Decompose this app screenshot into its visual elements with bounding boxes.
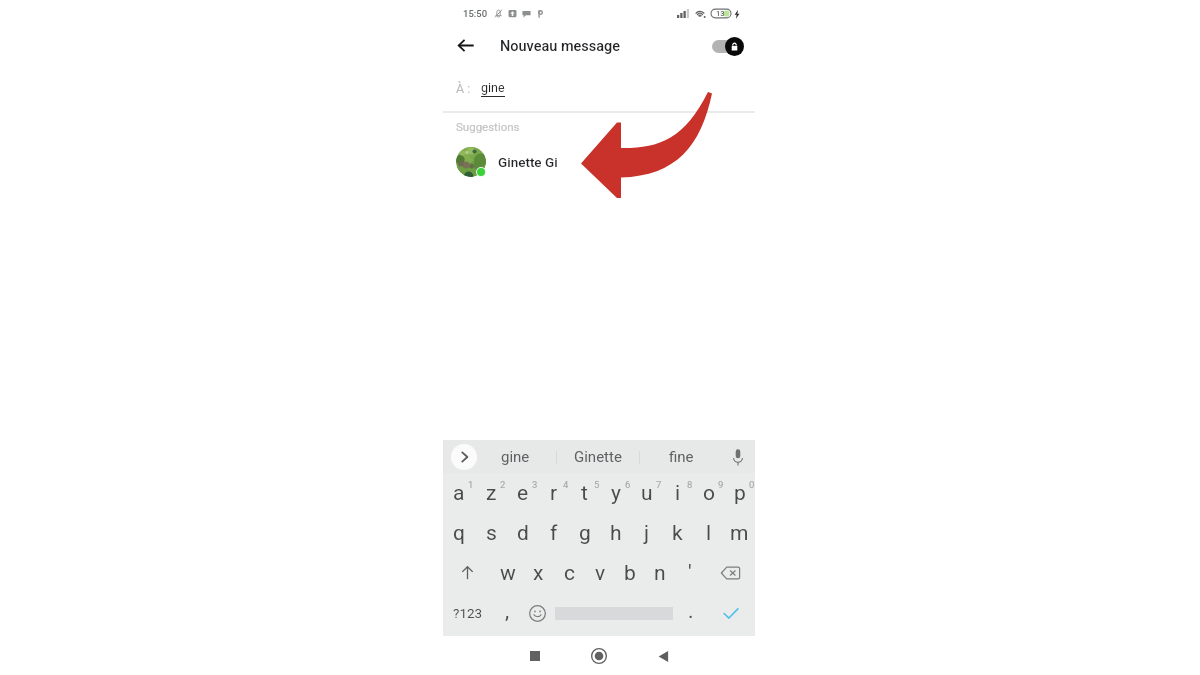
button[interactable]: j [631, 513, 662, 553]
staticText: Nouveau message [500, 38, 621, 55]
staticText: f [550, 521, 558, 546]
button[interactable]: c [554, 553, 585, 593]
button[interactable]: g [569, 513, 600, 553]
button[interactable]: Ginette Gi [443, 145, 755, 178]
staticText: 15:50 [463, 8, 488, 19]
button[interactable]: ?123 [443, 593, 493, 633]
staticText: c [564, 561, 575, 586]
button[interactable]: e [507, 473, 538, 513]
button[interactable]: q [443, 513, 475, 553]
button[interactable]: x [523, 553, 554, 593]
staticText: g [579, 521, 591, 546]
staticText: 5 [594, 479, 600, 490]
staticText: Suggestions [456, 120, 520, 133]
button[interactable]: z [475, 473, 507, 513]
staticText: r [550, 481, 558, 506]
staticText: s [486, 521, 497, 546]
button[interactable]: f [538, 513, 569, 553]
staticText: gine [481, 80, 505, 95]
button[interactable]: t [569, 473, 600, 513]
staticText: y [611, 481, 621, 506]
staticText: 9 [718, 479, 724, 490]
button[interactable]: , [493, 593, 521, 633]
staticText: 6 [625, 479, 631, 490]
button[interactable]: Retour [643, 641, 683, 671]
button[interactable]: Retour [449, 29, 483, 63]
button[interactable]: s [475, 513, 507, 553]
staticText: 3 [532, 479, 538, 490]
button[interactable]: o [693, 473, 724, 513]
staticText: 1 [468, 479, 474, 490]
button[interactable]: n [645, 553, 675, 593]
button[interactable]: d [507, 513, 538, 553]
button[interactable]: w [492, 553, 523, 593]
staticText: 8 [687, 479, 693, 490]
button[interactable]: y [600, 473, 631, 513]
staticText: gine [501, 448, 530, 466]
staticText: 7 [656, 479, 662, 490]
button[interactable]: u [631, 473, 662, 513]
staticText: n [654, 561, 666, 586]
button[interactable]: Chiffrement active [711, 36, 744, 56]
staticText: p [734, 481, 746, 506]
button[interactable]: Plus de suggestions [451, 444, 477, 470]
button[interactable]: h [600, 513, 631, 553]
staticText: m [730, 521, 749, 546]
button[interactable]: p [724, 473, 755, 513]
staticText: 0 [749, 479, 755, 490]
button[interactable]: Accueil [579, 641, 619, 671]
button[interactable]: m [724, 513, 755, 553]
button[interactable]: ' [675, 553, 705, 593]
button[interactable]: r [538, 473, 569, 513]
staticText: o [703, 481, 715, 506]
button[interactable]: Saisie vocale [728, 447, 748, 467]
button[interactable]: a [443, 473, 475, 513]
staticText: Ginette Gi [498, 154, 558, 170]
staticText: t [581, 481, 588, 506]
staticText: 4 [563, 479, 569, 490]
staticText: . [688, 599, 694, 624]
staticText: h [610, 521, 622, 546]
staticText: ?123 [453, 605, 483, 621]
button[interactable]: Supprimer [705, 553, 755, 593]
button[interactable]: k [662, 513, 693, 553]
staticText: a [453, 481, 465, 506]
button[interactable]: l [693, 513, 724, 553]
staticText: , [505, 599, 510, 624]
staticText: l [706, 521, 712, 546]
button[interactable]: Valider [707, 593, 755, 633]
staticText: ' [688, 560, 692, 585]
button[interactable]: Espace [554, 593, 674, 633]
staticText: v [595, 561, 606, 586]
staticText: z [486, 481, 497, 506]
button[interactable]: . [674, 593, 707, 633]
staticText: e [517, 481, 529, 506]
button[interactable]: Applications recentes [515, 641, 555, 671]
staticText: w [500, 561, 516, 586]
staticText: 13 [716, 9, 725, 18]
staticText: j [644, 521, 650, 546]
button[interactable]: v [585, 553, 615, 593]
staticText: u [641, 481, 653, 506]
staticText: x [533, 561, 544, 586]
staticText: d [517, 521, 529, 546]
staticText: i [675, 481, 681, 506]
staticText: b [624, 561, 636, 586]
staticText: k [672, 521, 683, 546]
button[interactable]: i [662, 473, 693, 513]
staticText: q [453, 521, 465, 546]
staticText: 2 [500, 479, 506, 490]
staticText: À : [456, 81, 471, 96]
button[interactable]: Majuscule [443, 553, 492, 593]
staticText: Ginette [574, 448, 622, 466]
button[interactable]: Emoji [521, 593, 554, 633]
staticText: fine [669, 448, 694, 466]
button[interactable]: b [615, 553, 645, 593]
